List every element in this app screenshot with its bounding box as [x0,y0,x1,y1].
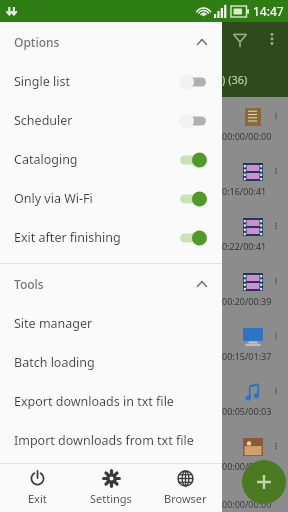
staticText: 00:15/01:37 [222,350,272,362]
staticText: 0:22/00:41 [222,240,267,252]
button[interactable]: Only via Wi-Fi [0,179,222,218]
button[interactable]: Exit after finishing [0,218,222,257]
button[interactable]: Site manager [0,304,222,343]
button[interactable]: Single list [0,62,222,101]
button[interactable]: Scheduler [0,101,222,140]
staticText: Exit after finishing [14,229,121,246]
staticText: Scheduler [14,112,73,129]
other: More options [265,32,279,46]
staticText: ) (36) [222,72,248,87]
other: Filter [232,32,248,48]
staticText: Only via Wi-Fi [14,190,93,207]
staticText: Browser [164,491,207,506]
other: Settings [103,470,120,487]
button[interactable]: Tools [0,264,222,304]
button[interactable]: Browser [148,464,222,512]
staticText: 00:00/00:00 [222,460,272,472]
staticText: Single list [14,73,70,90]
staticText: Export downloads in txt file [14,393,174,410]
staticText: Cataloging [14,151,78,168]
button[interactable]: Settings [74,464,148,512]
staticText: 14:47 [253,3,284,19]
button[interactable]: Import downloads from txt file [0,421,222,460]
button[interactable]: Add download [242,460,286,504]
staticText: 00:00/00:00 [222,130,272,142]
button[interactable]: Batch loading [0,343,222,382]
staticText: Import downloads from txt file [14,432,194,449]
button[interactable]: Export downloads in txt file [0,382,222,421]
button[interactable]: Options [0,22,222,62]
staticText: Site manager [14,315,93,332]
staticText: Options [14,34,60,50]
staticText: 00:00/00:00 [222,498,272,510]
staticText: Tools [14,276,44,292]
button[interactable]: Exit [0,464,74,512]
staticText: 0:16/00:41 [222,185,267,197]
other: Browser [177,470,194,487]
staticText: 00:05/00:03 [222,405,272,417]
button[interactable]: Cataloging [0,140,222,179]
staticText: Batch loading [14,354,95,371]
other: Exit [29,470,46,487]
staticText: Settings [90,491,132,506]
staticText: Exit [28,491,47,506]
staticText: 00:20/00:39 [222,295,272,307]
